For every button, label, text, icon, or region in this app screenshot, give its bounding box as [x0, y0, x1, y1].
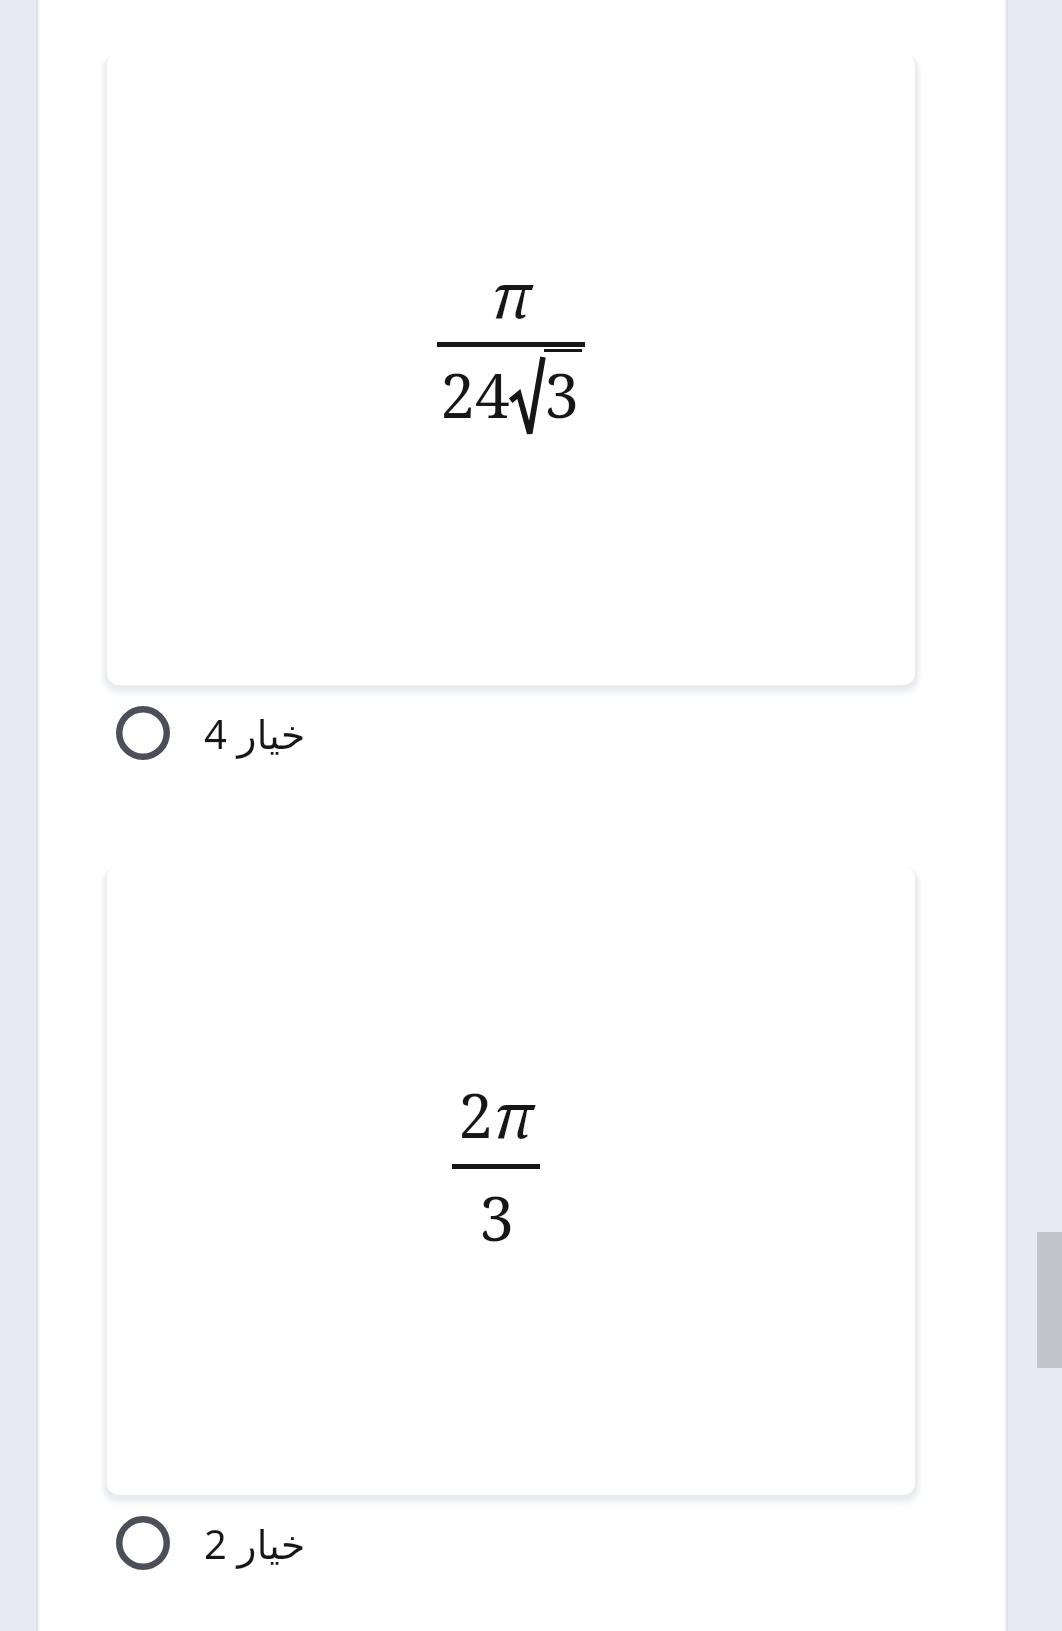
staticText: π	[491, 252, 532, 336]
staticText: π	[493, 1072, 534, 1156]
staticText: 2	[458, 1072, 493, 1156]
staticText: خيار 4	[204, 706, 306, 760]
button[interactable]: 2	[107, 866, 915, 1495]
other: خيار 2	[107, 1507, 179, 1579]
staticText: خيار 2	[204, 1516, 306, 1570]
other: خيار 4	[107, 697, 179, 769]
button[interactable]: π	[107, 53, 915, 685]
button[interactable]: خيار 4	[104, 685, 584, 781]
button[interactable]: خيار 2	[104, 1495, 584, 1591]
staticText: 3	[479, 1175, 514, 1259]
staticText: 24	[440, 352, 510, 436]
staticText: 3	[544, 352, 579, 436]
